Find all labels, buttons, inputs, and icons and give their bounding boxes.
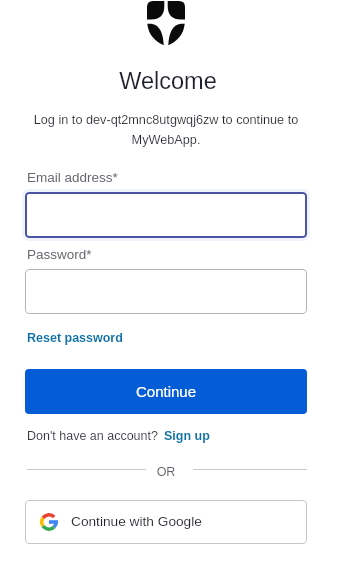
staticText: Welcome bbox=[27, 68, 309, 94]
staticText: Sign up bbox=[164, 429, 210, 443]
button[interactable]: Reset password bbox=[24, 328, 126, 348]
staticText: Log in to dev-qt2mnc8utgwqj6zw to contin… bbox=[25, 113, 307, 147]
button[interactable] bbox=[25, 192, 307, 238]
staticText: Continue with Google bbox=[71, 514, 202, 529]
staticText: Password* bbox=[27, 247, 92, 262]
button[interactable]: Continue bbox=[25, 369, 307, 414]
staticText: Reset password bbox=[27, 331, 123, 345]
staticText: OR bbox=[25, 465, 307, 479]
staticText: Continue bbox=[136, 383, 197, 400]
staticText: Don't have an account? bbox=[27, 429, 158, 443]
button[interactable]: Sign up bbox=[164, 429, 210, 443]
button[interactable] bbox=[25, 269, 307, 314]
button[interactable]: Continue with Google bbox=[25, 500, 307, 544]
staticText: Email address* bbox=[27, 170, 118, 185]
